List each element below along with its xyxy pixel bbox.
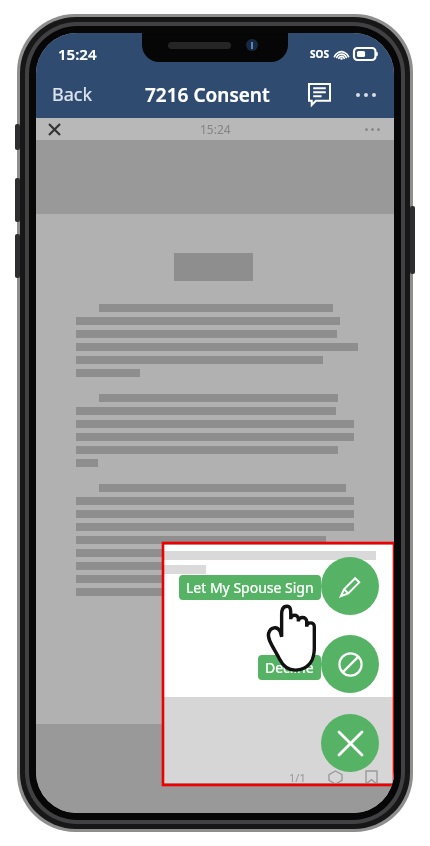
staticText: 15:24 bbox=[58, 44, 97, 64]
button[interactable]: Decline bbox=[321, 635, 379, 693]
button[interactable]: Bookmark bbox=[363, 768, 380, 787]
button[interactable]: Close bbox=[44, 119, 65, 140]
staticText: SOS bbox=[310, 47, 329, 61]
staticText: Decline bbox=[265, 658, 314, 677]
button[interactable]: Document options bbox=[359, 122, 386, 137]
button[interactable]: 3D view bbox=[326, 768, 345, 787]
staticText: 1/1 bbox=[289, 770, 306, 785]
button[interactable]: Sign bbox=[321, 557, 379, 615]
staticText: Let My Spouse Sign bbox=[186, 578, 314, 597]
staticText: Back bbox=[52, 82, 93, 107]
button[interactable]: Close bbox=[321, 714, 379, 772]
staticText: 15:24 bbox=[200, 121, 231, 137]
button[interactable]: Let My Spouse Sign bbox=[179, 575, 321, 600]
staticText: 7216 Consent bbox=[145, 82, 270, 108]
button[interactable]: Decline bbox=[258, 655, 321, 680]
button[interactable]: Messages bbox=[301, 76, 338, 113]
button[interactable]: More options bbox=[346, 83, 386, 107]
button[interactable]: Back bbox=[42, 74, 103, 115]
